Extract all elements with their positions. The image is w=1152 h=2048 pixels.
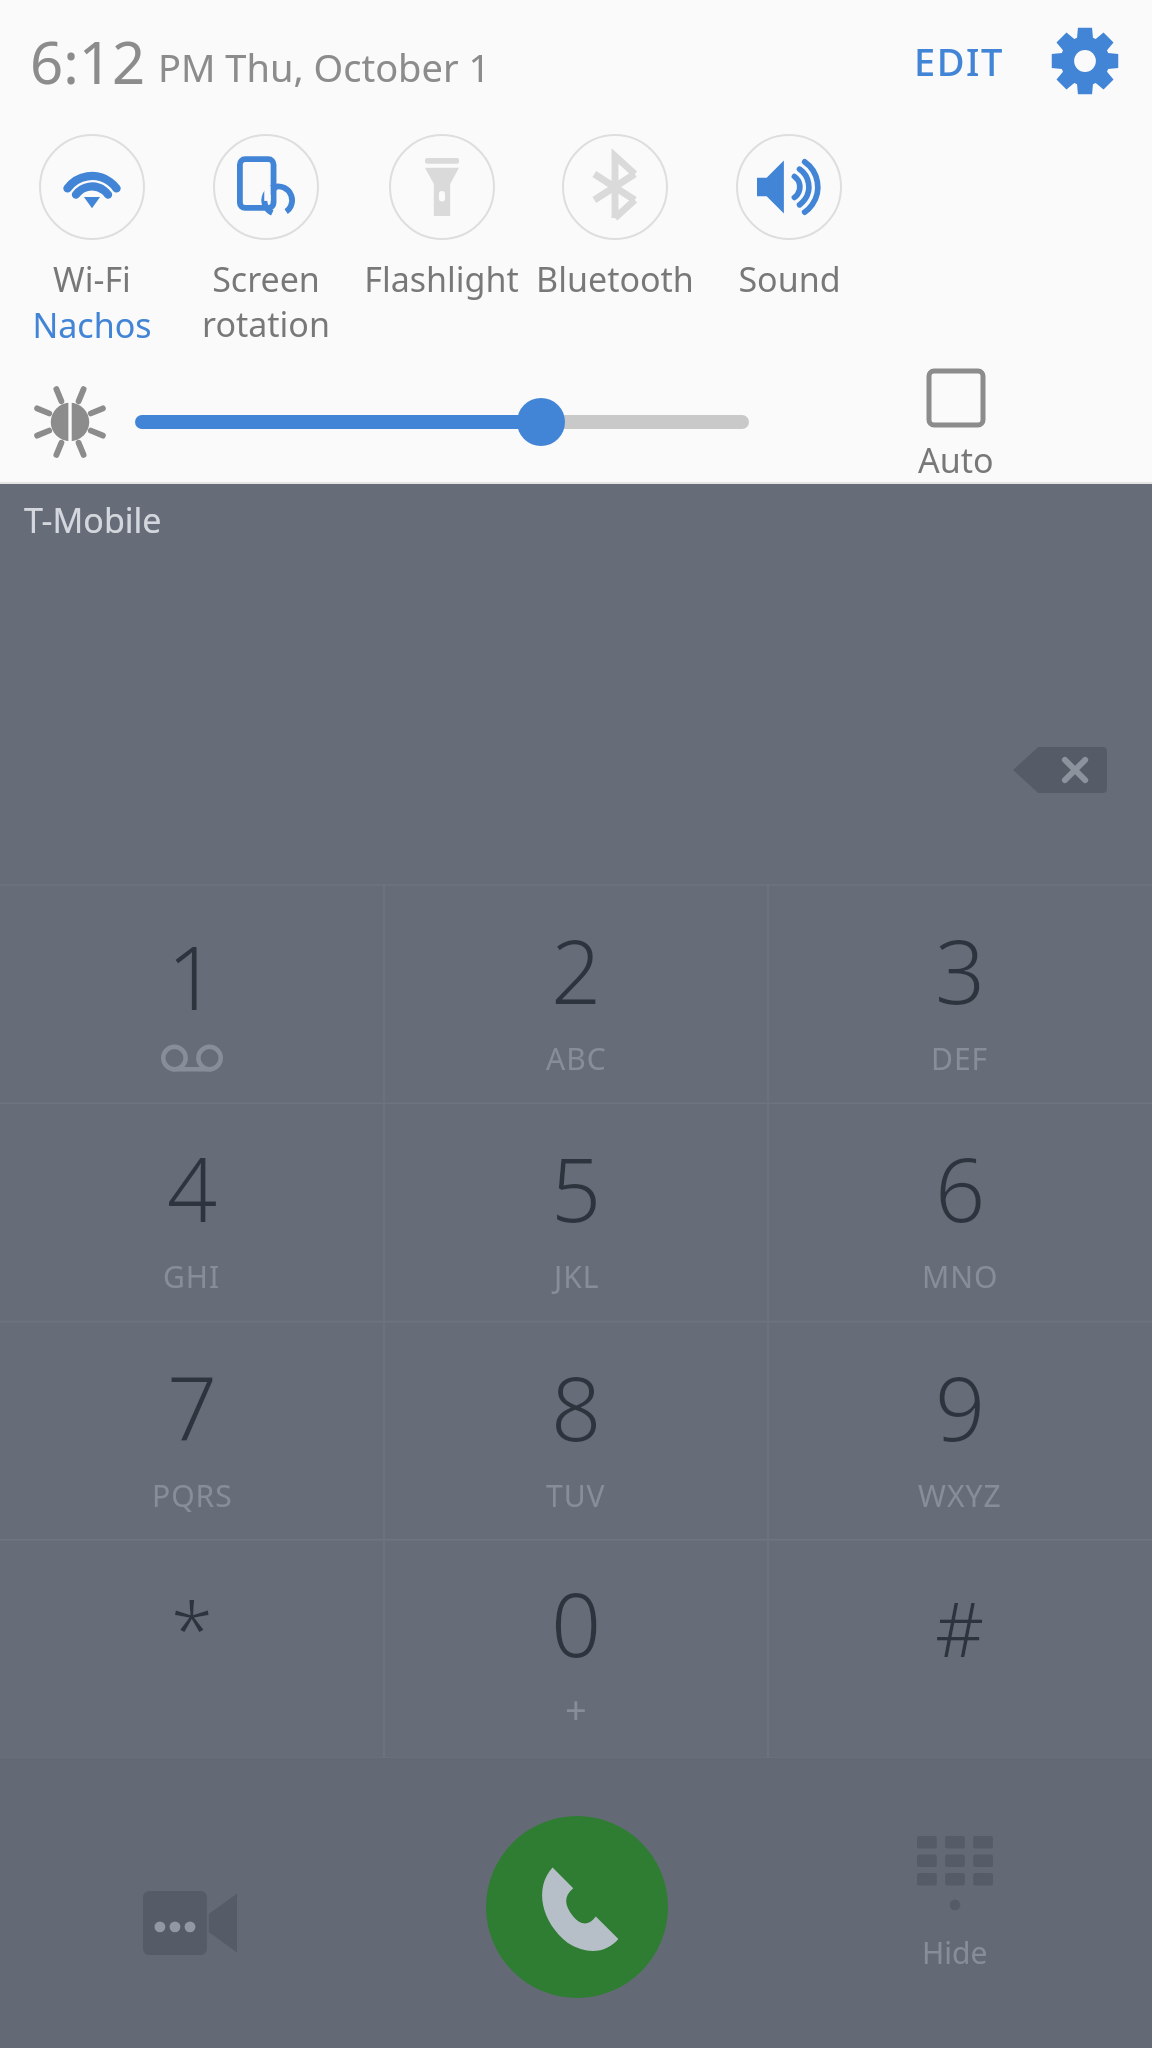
button[interactable]: 8 — [384, 1322, 768, 1540]
staticText: Flashlight — [364, 256, 519, 302]
staticText: 7 — [167, 1347, 218, 1467]
staticText: 6 — [935, 1128, 986, 1248]
button[interactable]: Bluetooth — [527, 126, 703, 366]
button[interactable]: 4 — [0, 1103, 384, 1321]
staticText: ABC — [546, 1038, 607, 1079]
staticText: JKL — [554, 1256, 600, 1297]
staticText: 1 — [167, 916, 218, 1036]
staticText: 0 — [551, 1563, 602, 1683]
button[interactable]: Video call — [95, 1863, 285, 1983]
staticText: DEF — [931, 1038, 989, 1079]
button[interactable]: Call — [486, 1816, 668, 1998]
button[interactable]: Wi-Fi — [4, 126, 180, 366]
staticText: + — [565, 1683, 588, 1735]
staticText: WXYZ — [918, 1475, 1002, 1516]
button[interactable]: Brightness — [26, 378, 114, 466]
button[interactable]: 1 — [0, 885, 384, 1103]
button[interactable]: 2 — [384, 885, 768, 1103]
staticText: Screen rotation — [202, 256, 330, 346]
staticText: 9 — [935, 1347, 986, 1467]
staticText: TUV — [546, 1475, 606, 1516]
staticText: 5 — [551, 1128, 602, 1248]
button[interactable]: Flashlight — [353, 126, 529, 366]
button[interactable] — [130, 378, 754, 466]
button[interactable]: Settings — [1044, 20, 1126, 102]
staticText: PQRS — [152, 1475, 233, 1516]
staticText: PM Thu, October 1 — [158, 41, 491, 93]
button[interactable]: 6 — [768, 1103, 1152, 1321]
staticText: * — [171, 1576, 213, 1680]
staticText: Bluetooth — [536, 256, 694, 302]
button[interactable]: EDIT — [904, 25, 1014, 97]
staticText: GHI — [163, 1256, 221, 1297]
staticText: 3 — [935, 910, 986, 1030]
button[interactable]: 0 — [384, 1540, 768, 1758]
button[interactable]: Auto — [760, 368, 1152, 484]
button[interactable]: 3 — [768, 885, 1152, 1103]
button[interactable]: 5 — [384, 1103, 768, 1321]
button[interactable]: 7 — [0, 1322, 384, 1540]
staticText: EDIT — [914, 35, 1004, 87]
staticText: 6:12 — [30, 22, 146, 101]
staticText: Auto — [918, 437, 994, 483]
button[interactable]: 9 — [768, 1322, 1152, 1540]
staticText: T-Mobile — [24, 497, 162, 543]
staticText: Nachos — [32, 302, 152, 348]
button[interactable]: Hide — [860, 1836, 1050, 2006]
staticText: 4 — [167, 1128, 218, 1248]
button[interactable]: Backspace — [995, 728, 1125, 812]
staticText: Hide — [922, 1932, 988, 1973]
button[interactable]: # — [768, 1540, 1152, 1758]
button[interactable]: * — [0, 1540, 384, 1758]
staticText: 2 — [551, 910, 602, 1030]
staticText: MNO — [922, 1256, 999, 1297]
staticText: Sound — [738, 256, 841, 302]
staticText: # — [935, 1576, 985, 1680]
button[interactable]: Sound — [701, 126, 877, 366]
button[interactable]: Screen rotation — [178, 126, 354, 366]
staticText: 8 — [551, 1347, 602, 1467]
staticText: Wi-Fi — [53, 256, 131, 302]
